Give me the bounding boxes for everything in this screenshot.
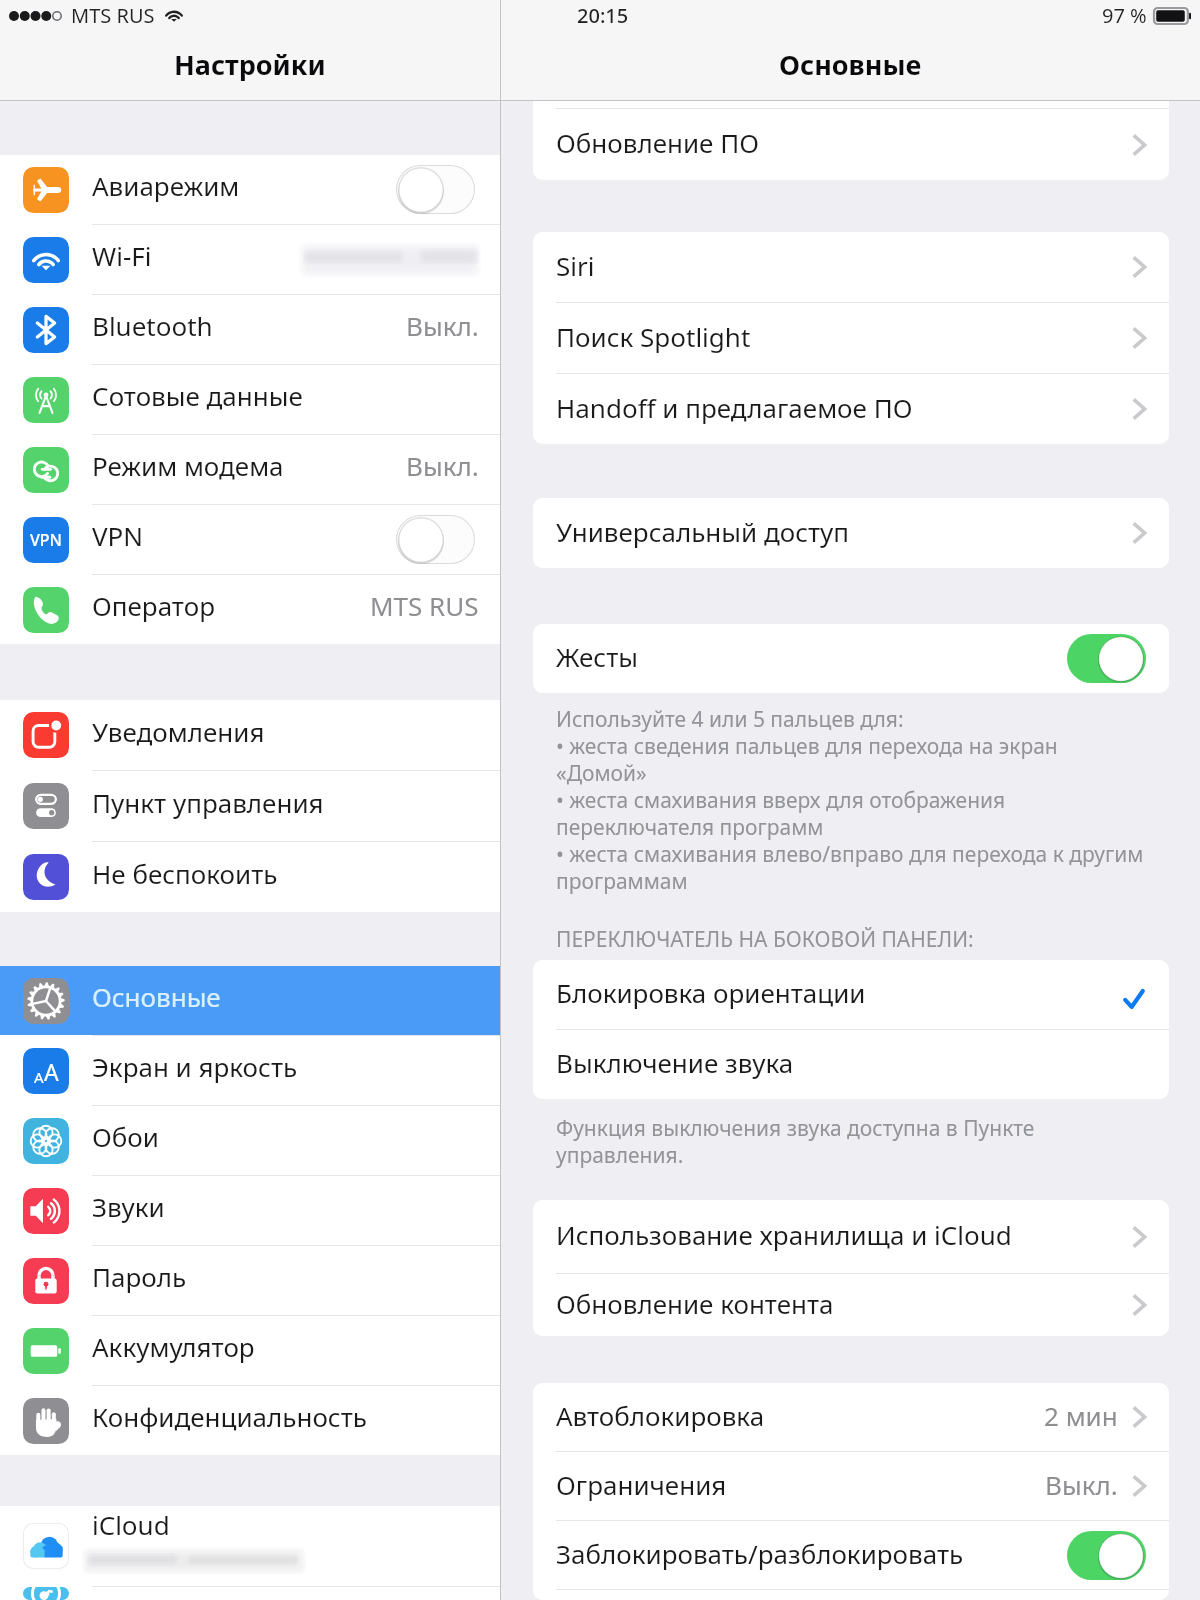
button[interactable]: Wi-Fi <box>0 225 500 294</box>
staticText: Жесты <box>556 639 1067 674</box>
button[interactable]: Обои <box>0 1106 500 1175</box>
staticText: Функция выключения звука доступна в Пунк… <box>556 1114 1035 1169</box>
button[interactable]: Switch off <box>396 165 475 214</box>
staticText: Оператор <box>92 588 215 623</box>
staticText: VPN <box>30 529 63 551</box>
button[interactable]: Ограничения <box>533 1452 1169 1520</box>
staticText: Экран и яркость <box>92 1049 298 1084</box>
staticText: Конфиденциальность <box>92 1399 367 1434</box>
staticText: Обновление ПО <box>556 125 1132 160</box>
staticText: Не беспокоить <box>92 856 278 891</box>
button[interactable]: Handoff и предлагаемое ПО <box>533 374 1169 444</box>
staticText: Ограничения <box>556 1467 1045 1502</box>
staticText: Заблокировать/разблокировать <box>556 1536 1067 1571</box>
button[interactable]: Оператор <box>0 575 500 644</box>
staticText: A <box>34 1067 44 1087</box>
staticText: Автоблокировка <box>556 1398 1044 1433</box>
staticText: Выкл. <box>1045 1467 1118 1502</box>
staticText: Wi-Fi <box>92 238 152 273</box>
staticText: Siri <box>556 248 1132 283</box>
button[interactable]: Siri <box>533 232 1169 302</box>
button[interactable]: Не беспокоить <box>0 842 500 912</box>
other: Open <box>1132 1405 1146 1429</box>
other: Selected <box>1124 990 1144 1008</box>
staticText: Звуки <box>92 1189 165 1224</box>
staticText: Выкл. <box>406 308 479 343</box>
other: Open <box>1132 1293 1146 1317</box>
button[interactable]: Сотовые данные <box>0 365 500 434</box>
button[interactable] <box>0 1587 500 1600</box>
other: Open <box>1132 133 1146 157</box>
staticText: A <box>44 1056 59 1087</box>
staticText: Сотовые данные <box>92 378 303 413</box>
button[interactable]: Пароль <box>0 1246 500 1315</box>
button[interactable]: Аккумулятор <box>0 1316 500 1385</box>
button[interactable]: Bluetooth <box>0 295 500 364</box>
staticText: Пункт управления <box>92 785 324 820</box>
button[interactable]: Поиск Spotlight <box>533 303 1169 373</box>
other: Wi-Fi signal <box>164 10 184 22</box>
button[interactable]: VPN <box>0 505 500 574</box>
staticText: 97 % <box>1102 2 1147 29</box>
staticText: Handoff и предлагаемое ПО <box>556 390 1132 425</box>
staticText: MTS RUS <box>71 2 155 29</box>
staticText: MTS RUS <box>370 588 479 623</box>
other: Open <box>1132 521 1146 545</box>
button[interactable]: Использование хранилища и iCloud <box>533 1200 1169 1273</box>
staticText: Пароль <box>92 1259 187 1294</box>
staticText: iCloud <box>92 1507 170 1542</box>
button[interactable]: Авиарежим <box>0 155 500 224</box>
staticText: Обновление контента <box>556 1286 1132 1321</box>
button[interactable]: Switch on <box>1067 1531 1146 1580</box>
staticText: Уведомления <box>92 714 265 749</box>
staticText: 2 мин <box>1044 1398 1118 1433</box>
staticText: Блокировка ориентации <box>556 975 1124 1010</box>
other: Cellular signal <box>9 11 62 21</box>
other: Open <box>1132 397 1146 421</box>
staticText: VPN <box>92 518 144 553</box>
button[interactable]: Режим модема <box>0 435 500 504</box>
button[interactable]: Выключение звука <box>533 1030 1169 1099</box>
button[interactable]: Автоблокировка <box>533 1383 1169 1451</box>
staticText: Обои <box>92 1119 159 1154</box>
button[interactable]: iCloud <box>0 1506 500 1586</box>
other: Open <box>1132 1225 1146 1249</box>
button[interactable]: Пункт управления <box>0 771 500 841</box>
staticText: Аккумулятор <box>92 1329 255 1364</box>
staticText: Выкл. <box>406 448 479 483</box>
button[interactable]: Блокировка ориентации <box>533 960 1169 1029</box>
button[interactable]: Конфиденциальность <box>0 1386 500 1455</box>
staticText: Основные <box>779 46 922 83</box>
other: Open <box>1132 255 1146 279</box>
button[interactable]: A <box>0 1036 500 1105</box>
staticText: Выключение звука <box>556 1045 1146 1080</box>
staticText: Основные <box>92 979 221 1014</box>
button[interactable]: Switch off <box>396 515 475 564</box>
staticText: 20:15 <box>577 2 629 29</box>
other: Battery 97 percent <box>1154 8 1191 24</box>
other: Open <box>1132 326 1146 350</box>
button[interactable]: Жесты <box>533 624 1169 693</box>
button[interactable]: Уведомления <box>0 700 500 770</box>
button[interactable]: Обновление контента <box>533 1274 1169 1336</box>
staticText: Универсальный доступ <box>556 514 1132 549</box>
staticText: Используйте 4 или 5 пальцев для: • жеста… <box>556 705 1144 895</box>
button[interactable]: Обновление ПО <box>533 109 1169 180</box>
staticText: Поиск Spotlight <box>556 319 1132 354</box>
button[interactable]: Заблокировать/разблокировать <box>533 1521 1169 1589</box>
staticText: Режим модема <box>92 448 284 483</box>
staticText: Использование хранилища и iCloud <box>556 1217 1132 1252</box>
staticText: Настройки <box>174 46 326 83</box>
button[interactable]: Switch on <box>1067 634 1146 683</box>
button[interactable]: Универсальный доступ <box>533 498 1169 568</box>
staticText <box>556 1588 1146 1598</box>
staticText: Авиарежим <box>92 168 240 203</box>
other: Open <box>1132 1474 1146 1498</box>
button[interactable]: Звуки <box>0 1176 500 1245</box>
button[interactable]: Основные <box>0 966 500 1035</box>
staticText: Bluetooth <box>92 308 213 343</box>
staticText: ПЕРЕКЛЮЧАТЕЛЬ НА БОКОВОЙ ПАНЕЛИ: <box>556 925 974 954</box>
